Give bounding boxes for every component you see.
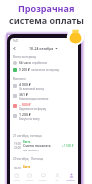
staticText: – 800 ₽ [19, 102, 31, 107]
button[interactable]: Задачи [36, 169, 50, 184]
staticText: 17:00 [14, 171, 21, 175]
staticText: начислено за период [31, 68, 59, 72]
button[interactable]: 19:00 [13, 138, 75, 153]
staticText: 9:41 [13, 39, 19, 42]
staticText: система оплаты [9, 14, 84, 26]
staticText: 1 200 ₽ [19, 112, 31, 117]
staticText: Пятница [31, 157, 44, 161]
staticText: отработано [32, 61, 48, 65]
button[interactable]: Профиль [64, 169, 78, 184]
button[interactable]: 1 200 ₽ [13, 111, 75, 121]
button[interactable]: Чат [50, 169, 64, 184]
staticText: 21 октября, пятница [13, 134, 42, 138]
button[interactable]: 08:00 [13, 163, 75, 178]
staticText: Профиль [66, 179, 76, 182]
staticText: Смена началась [23, 143, 51, 148]
button[interactable]: 9 200 ₽ [13, 66, 75, 73]
staticText: Прозрачная [18, 2, 75, 14]
staticText: +1 500 ₽ [62, 144, 74, 148]
staticText: цех Ленина 4 [23, 173, 40, 176]
staticText: Смены [13, 179, 20, 182]
staticText: 23:00 [14, 146, 21, 150]
button[interactable]: 361 ₽ [13, 91, 75, 101]
staticText: 9 200 ₽ [19, 68, 30, 72]
staticText: 64 часа [19, 61, 31, 65]
staticText: 361 ₽ [19, 92, 28, 97]
staticText: Вахта [23, 140, 31, 143]
staticText: цех Ленина 4 [23, 148, 40, 151]
staticText: Всего за период [13, 55, 36, 59]
staticText: Выплаты [13, 77, 26, 81]
button[interactable]: Оплата [23, 169, 36, 184]
staticText: Оплата [26, 179, 34, 182]
staticText: 19:00 [14, 142, 21, 146]
button[interactable]: 18–24 октября [28, 45, 59, 51]
button[interactable]: Смены [10, 169, 23, 184]
staticText: Удержание за форму [19, 107, 47, 111]
staticText: 08:00 [14, 167, 21, 171]
staticText: Вахта [23, 165, 31, 168]
staticText: За вахтовый выезд [19, 87, 44, 91]
staticText: Задачи [39, 179, 47, 182]
staticText: 20 октября, [13, 157, 30, 161]
button[interactable]: 64 часа [13, 59, 75, 66]
button[interactable]: Back [10, 45, 18, 51]
button[interactable]: – 800 ₽ [13, 101, 75, 111]
staticText: Компенсация питания [19, 97, 49, 101]
staticText: 18–24 октября [29, 46, 54, 51]
staticText: 4 000 ₽ [19, 82, 31, 87]
staticText: Бонусы за вахту [19, 117, 40, 121]
staticText: Чат [55, 179, 59, 182]
button[interactable]: 4 000 ₽ [13, 81, 75, 91]
